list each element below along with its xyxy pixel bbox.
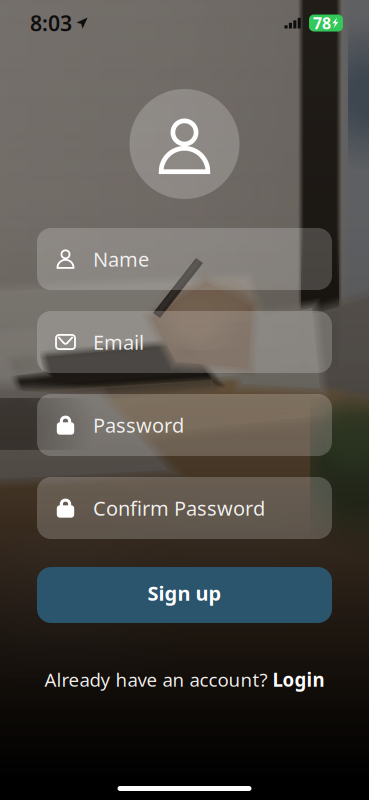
button[interactable]: Password — [37, 394, 332, 456]
staticText: Confirm Password — [93, 495, 265, 521]
staticText: Login — [267, 667, 324, 692]
staticText: Sign up — [147, 580, 221, 606]
staticText: Already have an account? — [44, 667, 267, 692]
button[interactable]: Already have an account? — [44, 667, 324, 692]
staticText: Password — [93, 412, 184, 438]
staticText: Name — [93, 246, 149, 272]
staticText: Email — [93, 329, 144, 355]
button[interactable]: Sign up — [37, 567, 332, 623]
button[interactable]: Email — [37, 311, 332, 373]
button[interactable]: Name — [37, 228, 332, 290]
button[interactable]: Confirm Password — [37, 477, 332, 539]
staticText: 8:03 — [30, 9, 72, 37]
staticText: 78 — [313, 12, 331, 34]
